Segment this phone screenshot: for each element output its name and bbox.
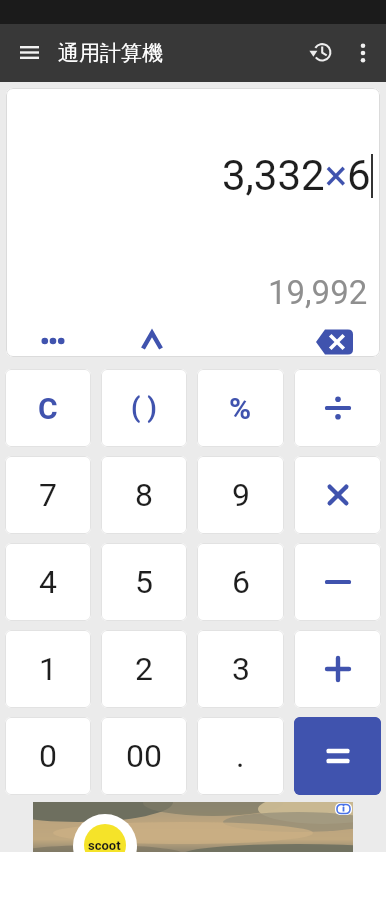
- staticText: 00: [126, 737, 162, 775]
- staticText: 通用計算機: [58, 40, 163, 66]
- button[interactable]: [306, 327, 362, 357]
- button[interactable]: 5: [101, 543, 187, 621]
- staticText: 6: [232, 563, 250, 601]
- staticText: 3,332×6: [222, 151, 371, 200]
- staticText: 8: [135, 476, 153, 514]
- staticText: 3: [232, 650, 250, 688]
- button[interactable]: 00: [101, 717, 187, 795]
- button[interactable]: 3: [197, 630, 284, 708]
- staticText: 4: [39, 563, 57, 601]
- button[interactable]: 2: [101, 630, 187, 708]
- button[interactable]: [294, 543, 381, 621]
- staticText: 0: [39, 737, 57, 775]
- staticText: C: [38, 391, 58, 426]
- button[interactable]: [10, 34, 48, 72]
- button[interactable]: 1: [5, 630, 91, 708]
- button[interactable]: [27, 326, 79, 356]
- button[interactable]: [344, 34, 382, 72]
- button[interactable]: 7: [5, 456, 91, 534]
- button[interactable]: ( ): [101, 369, 187, 447]
- button[interactable]: scoot: [33, 802, 353, 852]
- staticText: 5: [135, 563, 153, 601]
- button[interactable]: .: [197, 717, 284, 795]
- staticText: 2: [135, 650, 153, 688]
- button[interactable]: 8: [101, 456, 187, 534]
- button[interactable]: %: [197, 369, 284, 447]
- button[interactable]: [302, 34, 340, 72]
- staticText: scoot: [88, 838, 121, 852]
- button[interactable]: 0: [5, 717, 91, 795]
- staticText: %: [229, 391, 252, 426]
- button[interactable]: [294, 369, 381, 447]
- button[interactable]: [128, 326, 176, 356]
- button[interactable]: 9: [197, 456, 284, 534]
- staticText: .: [236, 737, 245, 775]
- staticText: 7: [39, 476, 57, 514]
- staticText: 9: [232, 476, 250, 514]
- button[interactable]: 6: [197, 543, 284, 621]
- button[interactable]: C: [5, 369, 91, 447]
- staticText: 19,992: [268, 273, 368, 312]
- button[interactable]: 4: [5, 543, 91, 621]
- staticText: 1: [39, 650, 57, 688]
- button[interactable]: [294, 630, 381, 708]
- button[interactable]: [294, 456, 381, 534]
- button[interactable]: [294, 717, 381, 795]
- staticText: ( ): [131, 392, 157, 424]
